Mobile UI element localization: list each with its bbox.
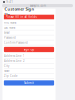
- staticText: example.com: [29, 4, 45, 7]
- staticText: Password: [4, 36, 16, 39]
- staticText: City: [4, 64, 9, 68]
- button[interactable]: Sign Up: [2, 45, 55, 52]
- staticText: Please fill in all fields: [5, 15, 36, 19]
- button[interactable]: Submit: [2, 79, 55, 85]
- staticText: Submit: [24, 81, 34, 85]
- staticText: 9:41: [6, 0, 13, 4]
- staticText: Last Name: [4, 26, 16, 29]
- staticText: Zip Code: [4, 74, 18, 78]
- staticText: State: [4, 69, 10, 73]
- staticText: First Name: [4, 21, 17, 24]
- staticText: Address Line 1: [4, 54, 25, 58]
- staticText: Confirm Password: [4, 41, 28, 44]
- staticText: Sign Up: [23, 48, 34, 51]
- staticText: Address Line 2: [4, 59, 25, 63]
- staticText: Email: [4, 31, 10, 34]
- staticText: Customer Sign Up: [4, 6, 34, 17]
